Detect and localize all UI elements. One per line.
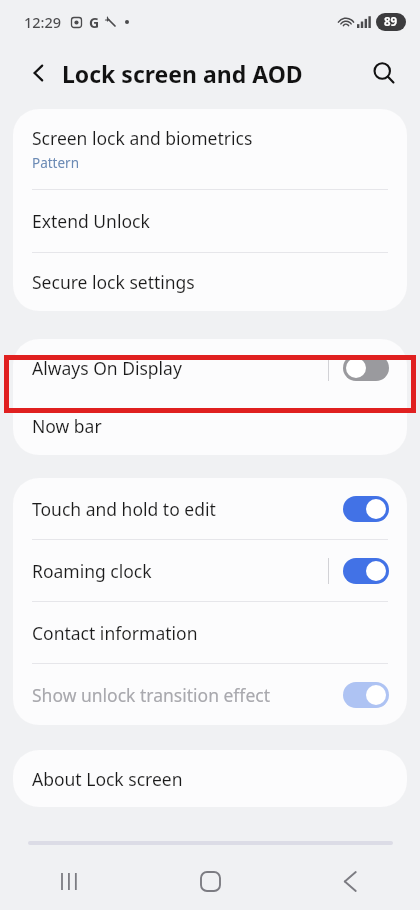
button[interactable]: Toggle: [343, 558, 389, 584]
button[interactable]: Roaming clock: [13, 540, 407, 601]
staticText: Screen lock and biometrics: [32, 126, 253, 150]
button[interactable]: Extend Unlock: [13, 190, 407, 252]
button[interactable]: Touch and hold to edit: [13, 478, 407, 539]
button[interactable]: Always On Display: [13, 339, 407, 397]
staticText: Contact information: [32, 621, 198, 645]
button[interactable]: Contact information: [13, 602, 407, 663]
button[interactable]: Back: [22, 56, 56, 90]
button[interactable]: Toggle: [343, 355, 389, 381]
staticText: Roaming clock: [32, 559, 152, 583]
staticText: 12:29: [24, 12, 62, 32]
staticText: Touch and hold to edit: [32, 497, 216, 521]
staticText: Secure lock settings: [32, 270, 195, 294]
button[interactable]: Back: [280, 852, 420, 910]
button[interactable]: Now bar: [13, 397, 407, 455]
button[interactable]: Toggle: [343, 682, 389, 708]
button[interactable]: Home: [140, 852, 280, 910]
button[interactable]: Screen lock and biometrics: [13, 109, 407, 189]
staticText: 89: [384, 14, 398, 30]
button[interactable]: Secure lock settings: [13, 253, 407, 311]
staticText: Always On Display: [32, 356, 182, 380]
staticText: Show unlock transition effect: [32, 683, 270, 707]
staticText: Lock screen and AOD: [62, 58, 303, 89]
button[interactable]: Show unlock transition effect: [13, 664, 407, 725]
button[interactable]: Search: [366, 55, 402, 91]
button[interactable]: Recents: [0, 852, 140, 910]
staticText: Extend Unlock: [32, 209, 150, 233]
staticText: Pattern: [32, 154, 80, 172]
staticText: About Lock screen: [32, 767, 183, 791]
button[interactable]: Toggle: [343, 496, 389, 522]
staticText: G: [89, 13, 100, 32]
button[interactable]: About Lock screen: [13, 750, 407, 807]
staticText: Now bar: [32, 414, 102, 438]
